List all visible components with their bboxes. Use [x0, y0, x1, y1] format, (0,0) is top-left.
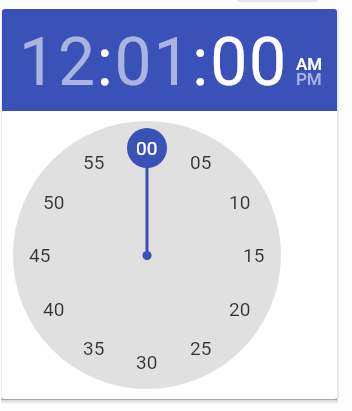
staticText: PM — [296, 69, 322, 89]
button[interactable]: 10 — [222, 188, 258, 216]
button[interactable]: 50 — [36, 188, 72, 216]
staticText: AM — [296, 54, 323, 74]
button[interactable]: 55 — [76, 148, 112, 176]
staticText: 30 — [136, 351, 158, 373]
staticText: 35 — [83, 337, 105, 359]
button[interactable]: 40 — [36, 295, 72, 323]
staticText: 25 — [190, 337, 212, 359]
staticText: 12:01:00 — [19, 24, 288, 101]
staticText: 50 — [43, 191, 65, 213]
button[interactable]: 05 — [183, 148, 219, 176]
button[interactable]: 20 — [222, 295, 258, 323]
button[interactable]: 25 — [183, 334, 219, 362]
button[interactable]: AM — [287, 53, 331, 75]
button[interactable]: PM — [287, 68, 331, 90]
button[interactable]: 00 — [127, 128, 167, 168]
staticText: 45 — [29, 244, 51, 266]
button[interactable]: 45 — [22, 241, 58, 269]
staticText: 55 — [83, 151, 105, 173]
button[interactable]: 15 — [236, 241, 272, 269]
staticText: 00 — [136, 137, 158, 159]
button[interactable]: 35 — [76, 334, 112, 362]
staticText: 40 — [43, 298, 65, 320]
button[interactable]: 12:01:00 — [19, 22, 309, 102]
staticText: 15 — [243, 244, 265, 266]
staticText: 10 — [229, 191, 251, 213]
staticText: 20 — [229, 298, 251, 320]
button[interactable]: 30 — [129, 348, 165, 376]
staticText: 05 — [190, 151, 212, 173]
